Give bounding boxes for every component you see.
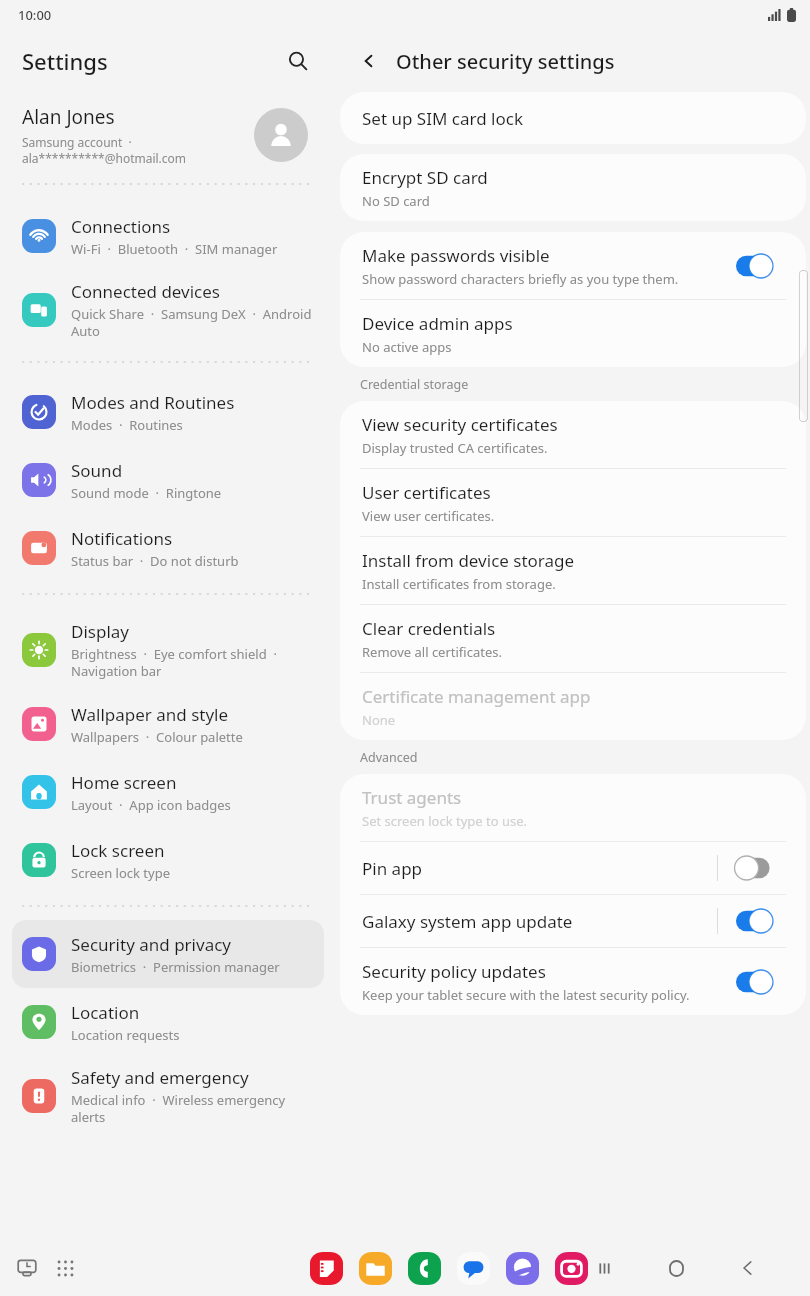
staticText: Advanced xyxy=(360,749,418,766)
staticText: Connected devices xyxy=(71,280,221,303)
staticText: Display xyxy=(71,620,129,643)
button[interactable]: Back xyxy=(350,42,388,80)
button[interactable]: Connected devices xyxy=(12,270,324,350)
button[interactable]: Alan Jones xyxy=(0,92,336,178)
button[interactable]: Safety and emergency xyxy=(12,1056,324,1136)
staticText: Brightness · Eye comfort shield · Naviga… xyxy=(71,645,277,680)
button[interactable]: files xyxy=(359,1252,392,1285)
staticText: Show password characters briefly as you … xyxy=(362,270,679,288)
staticText: Credential storage xyxy=(360,376,469,393)
button[interactable]: Security policy updates xyxy=(340,948,806,1015)
button[interactable]: Sound xyxy=(12,446,324,514)
staticText: Samsung account · xyxy=(22,134,132,150)
staticText: Clear credentials xyxy=(362,617,496,640)
staticText: Medical info · Wireless emergency alerts xyxy=(71,1091,286,1126)
button[interactable]: msg xyxy=(457,1252,490,1285)
button[interactable]: Galaxy system app update xyxy=(340,895,806,947)
button[interactable]: Home screen xyxy=(12,758,324,826)
staticText: Location xyxy=(71,1001,140,1024)
staticText: 10:00 xyxy=(18,6,52,24)
staticText: User certificates xyxy=(362,481,491,504)
staticText: Keep your tablet secure with the latest … xyxy=(362,986,690,1004)
staticText: Notifications xyxy=(71,527,173,550)
staticText: Certificate management app xyxy=(362,685,591,708)
staticText: Security policy updates xyxy=(362,960,546,983)
staticText: Galaxy system app update xyxy=(362,910,573,933)
staticText: Modes · Routines xyxy=(71,416,183,434)
button[interactable]: Recent apps xyxy=(10,1251,44,1285)
staticText: None xyxy=(362,711,396,729)
staticText: Layout · App icon badges xyxy=(71,796,231,814)
staticText: Screen lock type xyxy=(71,864,170,882)
button[interactable]: Lock screen xyxy=(12,826,324,894)
staticText: Alan Jones xyxy=(22,104,115,130)
staticText: Trust agents xyxy=(362,786,462,809)
staticText: Remove all certificates. xyxy=(362,643,502,661)
staticText: Display trusted CA certificates. xyxy=(362,439,548,457)
staticText: View user certificates. xyxy=(362,507,495,525)
button[interactable]: Connections xyxy=(12,202,324,270)
button[interactable]: Make passwords visible xyxy=(340,232,806,299)
button[interactable]: Pin app xyxy=(340,842,806,894)
button[interactable]: User certificates xyxy=(340,469,806,536)
button[interactable]: View security certificates xyxy=(340,401,806,468)
staticText: Connections xyxy=(71,215,171,238)
staticText: Wallpaper and style xyxy=(71,703,229,726)
staticText: Install from device storage xyxy=(362,549,575,572)
button[interactable]: Galaxy system app update xyxy=(730,904,784,938)
staticText: Sound xyxy=(71,459,123,482)
staticText: Lock screen xyxy=(71,839,165,862)
button[interactable]: Clear credentials xyxy=(340,605,806,672)
button[interactable]: Location xyxy=(12,988,324,1056)
staticText: Set screen lock type to use. xyxy=(362,812,528,830)
staticText: No active apps xyxy=(362,338,452,356)
button[interactable]: cam xyxy=(555,1252,588,1285)
staticText: Status bar · Do not disturb xyxy=(71,552,239,570)
staticText: Modes and Routines xyxy=(71,391,235,414)
staticText: Pin app xyxy=(362,857,423,880)
button[interactable]: Home xyxy=(654,1246,698,1290)
button[interactable]: Device admin apps xyxy=(340,300,806,367)
staticText: Biometrics · Permission manager xyxy=(71,958,280,976)
button[interactable]: net xyxy=(506,1252,539,1285)
staticText: View security certificates xyxy=(362,413,558,436)
staticText: Settings xyxy=(22,46,108,76)
staticText: Home screen xyxy=(71,771,177,794)
button[interactable]: Search xyxy=(278,41,318,81)
staticText: Quick Share · Samsung DeX · Android Auto xyxy=(71,305,312,340)
button[interactable]: Back xyxy=(726,1246,770,1290)
button[interactable]: Encrypt SD card xyxy=(340,154,806,221)
button[interactable]: Certificate management app xyxy=(340,673,806,740)
button[interactable]: Display xyxy=(12,610,324,690)
staticText: Encrypt SD card xyxy=(362,166,488,189)
staticText: Safety and emergency xyxy=(71,1066,249,1089)
staticText: Wi-Fi · Bluetooth · SIM manager xyxy=(71,240,278,258)
button[interactable]: phone xyxy=(408,1252,441,1285)
button[interactable]: Notifications xyxy=(12,514,324,582)
button[interactable]: Wallpaper and style xyxy=(12,690,324,758)
button[interactable]: Install from device storage xyxy=(340,537,806,604)
button[interactable]: Security and privacy xyxy=(12,920,324,988)
staticText: Set up SIM card lock xyxy=(362,107,523,130)
button[interactable]: Recents xyxy=(582,1246,626,1290)
button[interactable]: Trust agents xyxy=(340,774,806,841)
staticText: ala**********@hotmail.com xyxy=(22,150,187,166)
button[interactable]: Pin app xyxy=(730,851,784,885)
staticText: Wallpapers · Colour palette xyxy=(71,728,243,746)
button[interactable]: Make passwords visible xyxy=(730,249,784,283)
staticText: Location requests xyxy=(71,1026,180,1044)
button[interactable]: Modes and Routines xyxy=(12,378,324,446)
button[interactable]: Set up SIM card lock xyxy=(340,92,806,144)
staticText: Security and privacy xyxy=(71,933,232,956)
staticText: No SD card xyxy=(362,192,430,210)
staticText: Device admin apps xyxy=(362,312,513,335)
staticText: Other security settings xyxy=(396,48,615,75)
button[interactable]: notes xyxy=(310,1252,343,1285)
button[interactable]: Apps xyxy=(48,1251,82,1285)
staticText: Make passwords visible xyxy=(362,244,550,267)
button[interactable]: Security policy updates xyxy=(730,965,784,999)
staticText: Sound mode · Ringtone xyxy=(71,484,222,502)
staticText: Install certificates from storage. xyxy=(362,575,556,593)
